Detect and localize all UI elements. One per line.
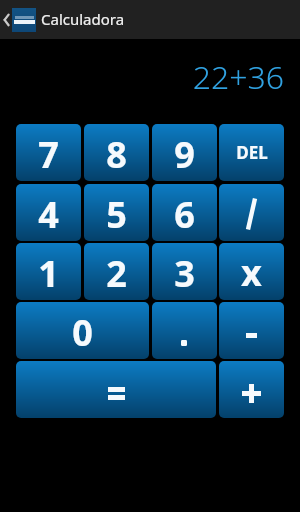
staticText: 2	[106, 249, 127, 298]
button[interactable]: 3	[152, 243, 217, 300]
staticText: 22+36	[192, 55, 284, 99]
button[interactable]: DEL	[219, 124, 284, 181]
staticText: 0	[72, 308, 93, 357]
button[interactable]: 2	[84, 243, 149, 300]
staticText: 1	[38, 249, 59, 298]
staticText: 5	[106, 190, 127, 239]
staticText: Calculadora	[41, 9, 125, 29]
button[interactable]: 9	[152, 124, 217, 181]
staticText: 9	[174, 130, 195, 179]
button[interactable]: 4	[16, 184, 81, 241]
staticText: 4	[38, 190, 59, 239]
button[interactable]: Minus	[219, 302, 284, 359]
button[interactable]: 0	[16, 302, 149, 359]
button[interactable]: =	[16, 361, 216, 418]
button[interactable]: Back	[0, 5, 11, 35]
button[interactable]: x	[219, 243, 284, 300]
button[interactable]: 8	[84, 124, 149, 181]
staticText: x	[241, 248, 262, 297]
staticText: 6	[174, 190, 195, 239]
button[interactable]: Divide	[219, 184, 284, 241]
button[interactable]: Plus	[219, 361, 284, 418]
staticText: DEL	[236, 141, 268, 164]
staticText: 8	[106, 130, 127, 179]
staticText: 7	[38, 130, 59, 179]
button[interactable]: 1	[16, 243, 81, 300]
button[interactable]: 6	[152, 184, 217, 241]
staticText: 3	[174, 249, 195, 298]
button[interactable]: .	[152, 302, 217, 359]
button[interactable]: 5	[84, 184, 149, 241]
button[interactable]: 7	[16, 124, 81, 181]
